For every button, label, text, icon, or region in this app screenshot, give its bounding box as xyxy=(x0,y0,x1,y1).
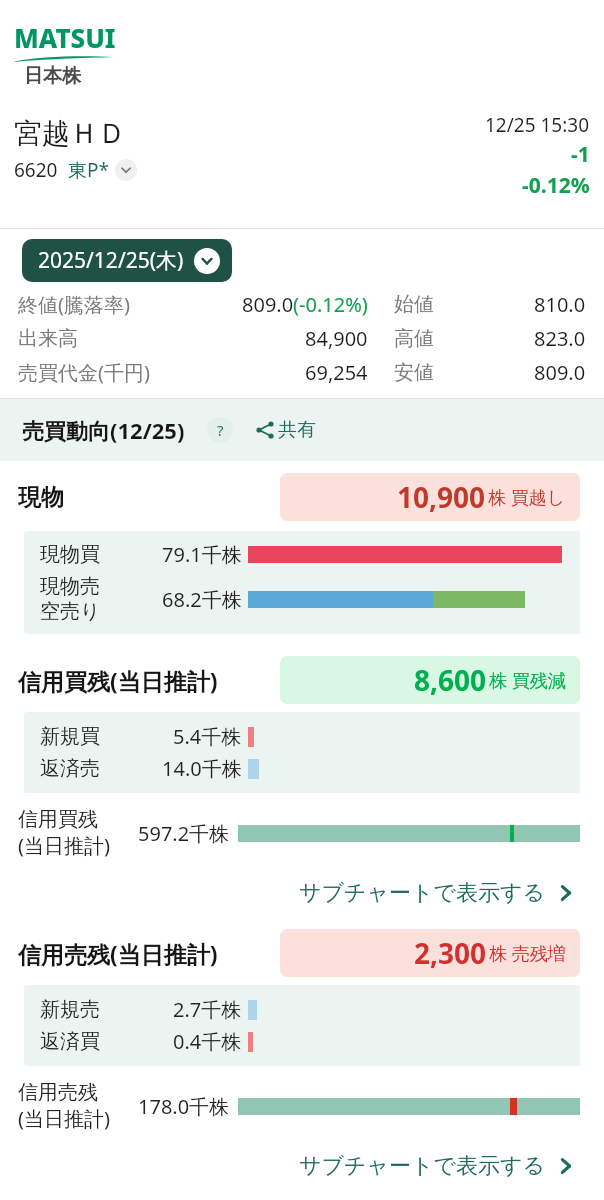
staticText: 株 買越し xyxy=(488,485,566,510)
button[interactable]: 8,600 xyxy=(280,656,580,704)
staticText: 日本株 xyxy=(24,64,81,88)
staticText: 6620 xyxy=(14,157,58,183)
staticText: 14.0千株 xyxy=(162,755,242,782)
staticText: 178.0千株 xyxy=(138,1093,230,1120)
button[interactable]: サブチャートで表示する xyxy=(295,1148,580,1184)
staticText: 返済買 xyxy=(40,1029,100,1054)
staticText: 高値 xyxy=(394,326,434,351)
staticText: 東P* xyxy=(68,157,109,183)
button[interactable]: 共有 xyxy=(255,418,316,442)
staticText: 現物売 xyxy=(40,574,100,599)
staticText: 売買代金(千円) xyxy=(18,359,150,386)
staticText: 84,900 xyxy=(305,325,368,352)
staticText: -1 xyxy=(571,140,590,169)
staticText: 空売り xyxy=(40,599,101,624)
staticText: 株 買残減 xyxy=(489,668,566,693)
staticText: 810.0 xyxy=(534,291,586,318)
staticText: (当日推計) xyxy=(18,832,110,859)
staticText: 信用買残(当日推計) xyxy=(18,665,218,696)
button[interactable]: サブチャートで表示する xyxy=(295,875,580,911)
staticText: 終値(騰落率) xyxy=(18,291,130,318)
staticText: 現物買 xyxy=(40,542,100,567)
staticText: 信用売残 xyxy=(18,1080,98,1105)
staticText: MATSUI xyxy=(14,20,116,55)
staticText: (当日推計) xyxy=(18,1105,110,1132)
staticText: 12/25 15:30 xyxy=(485,112,590,138)
staticText: ? xyxy=(217,420,224,440)
staticText: 8,600 xyxy=(414,661,487,699)
staticText: サブチャートで表示する xyxy=(299,879,546,907)
staticText: 株 売残増 xyxy=(489,941,566,966)
staticText: サブチャートで表示する xyxy=(299,1152,546,1180)
staticText: 新規買 xyxy=(40,724,100,749)
staticText: 共有 xyxy=(278,418,316,442)
button[interactable]: 10,900 xyxy=(280,473,580,521)
button[interactable]: 2025/12/25(木) xyxy=(22,239,232,282)
staticText: 5.4千株 xyxy=(173,723,242,750)
staticText: 597.2千株 xyxy=(138,820,230,847)
staticText: 809.0(-0.12%) xyxy=(242,291,368,318)
staticText: 809.0 xyxy=(534,359,586,386)
staticText: 69,254 xyxy=(305,359,368,386)
staticText: 宮越ＨＤ xyxy=(14,116,126,151)
staticText: 現物 xyxy=(18,483,64,512)
button[interactable]: Help xyxy=(207,417,233,443)
staticText: 信用買残 xyxy=(18,807,98,832)
staticText: 2,300 xyxy=(414,934,487,972)
button[interactable]: Market select xyxy=(115,159,137,181)
button[interactable]: 2,300 xyxy=(280,929,580,977)
staticText: 823.0 xyxy=(534,325,586,352)
staticText: 0.4千株 xyxy=(173,1028,242,1055)
staticText: 出来高 xyxy=(18,326,78,351)
staticText: 2025/12/25(木) xyxy=(38,246,184,275)
staticText: 始値 xyxy=(394,292,434,317)
staticText: 79.1千株 xyxy=(162,541,242,568)
staticText: 新規売 xyxy=(40,997,100,1022)
staticText: 安値 xyxy=(394,360,434,385)
staticText: 返済売 xyxy=(40,756,100,781)
staticText: 10,900 xyxy=(397,478,486,516)
staticText: 68.2千株 xyxy=(162,586,242,613)
staticText: 信用売残(当日推計) xyxy=(18,938,218,969)
staticText: -0.12% xyxy=(522,171,590,200)
staticText: 売買動向(12/25) xyxy=(22,415,185,445)
staticText: 2.7千株 xyxy=(173,996,242,1023)
